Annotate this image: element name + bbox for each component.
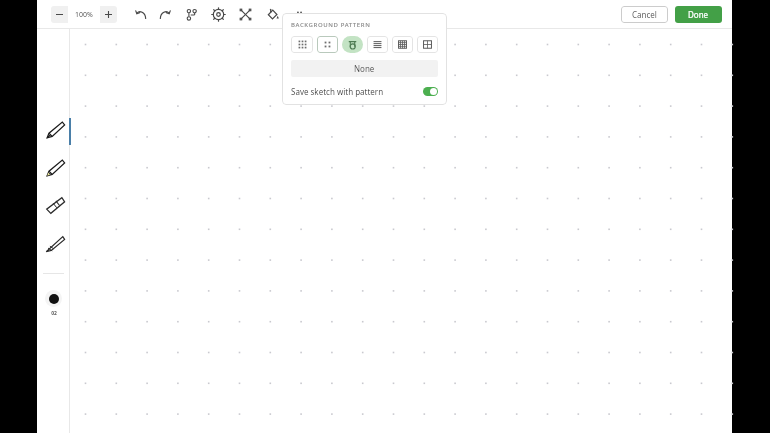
staticText: Save sketch with pattern [291, 86, 384, 97]
button[interactable]: Pattern option [291, 36, 313, 53]
button[interactable]: Pattern option [392, 36, 413, 53]
button[interactable]: Pattern option [342, 36, 363, 53]
button[interactable]: Undo [130, 3, 153, 26]
button[interactable]: Redo [153, 3, 176, 26]
button[interactable]: Settings [207, 3, 230, 26]
button[interactable]: Drawing tool [40, 191, 68, 219]
button[interactable]: Drawing tool [40, 115, 68, 143]
button[interactable]: Done [675, 6, 722, 23]
button[interactable]: Drawing tool [40, 229, 68, 257]
button[interactable]: Save sketch with pattern [291, 86, 438, 97]
staticText: None [354, 63, 375, 74]
button[interactable]: Transform [234, 3, 257, 26]
staticText: 100% [75, 10, 93, 20]
button[interactable]: Cancel [621, 6, 668, 23]
button[interactable]: None [291, 60, 438, 77]
button[interactable]: Zoom out [51, 6, 68, 23]
button[interactable]: Fill [261, 3, 284, 26]
button[interactable]: Colour and width [42, 287, 65, 320]
button[interactable]: Pattern option [317, 36, 338, 53]
button[interactable]: Layers [180, 3, 203, 26]
button[interactable]: 100% [68, 6, 100, 23]
staticText: Done [688, 9, 709, 20]
button[interactable]: More options [288, 3, 311, 26]
staticText: Cancel [632, 9, 657, 20]
button[interactable]: Zoom in [100, 6, 117, 23]
button[interactable]: Pattern option [367, 36, 388, 53]
button[interactable]: Pattern option [417, 36, 438, 53]
button[interactable]: Drawing tool [40, 153, 68, 181]
staticText: BACKGROUND PATTERN [291, 21, 371, 29]
staticText: 02 [51, 310, 57, 317]
